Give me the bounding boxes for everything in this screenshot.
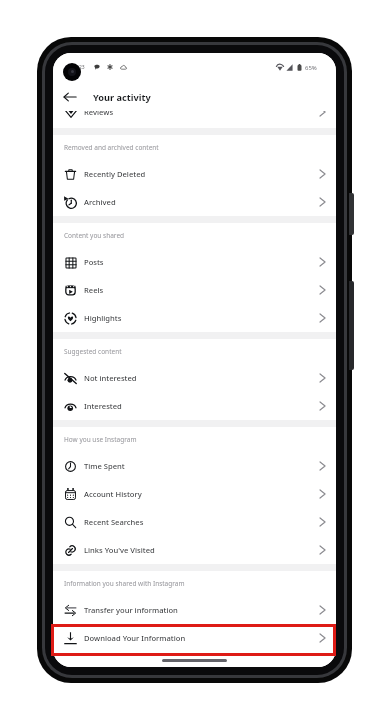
staticText: Your activity (93, 91, 151, 104)
staticText: Recently Deleted (84, 169, 146, 179)
staticText: Highlights (84, 313, 122, 323)
staticText: Reviews (84, 107, 114, 117)
button[interactable]: Posts (53, 248, 336, 276)
staticText: Posts (84, 257, 104, 267)
staticText: Recent Searches (84, 517, 144, 527)
button[interactable]: Reviews (53, 111, 336, 128)
button[interactable]: Back (60, 87, 80, 107)
button[interactable]: Links You've Visited (53, 536, 336, 564)
button[interactable]: Recent Searches (53, 508, 336, 536)
staticText: Information you shared with Instagram (64, 579, 185, 588)
button[interactable]: Archived (53, 188, 336, 216)
staticText: Download Your Information (84, 633, 186, 643)
button[interactable]: Not interested (53, 364, 336, 392)
staticText: Archived (84, 197, 116, 207)
staticText: 23 (79, 64, 85, 71)
button[interactable]: Download Your Information (53, 624, 336, 652)
button[interactable]: Transfer your information (53, 596, 336, 624)
staticText: Suggested content (64, 347, 122, 356)
button[interactable]: Interested (53, 392, 336, 420)
button[interactable]: Account History (53, 480, 336, 508)
staticText: Content you shared (64, 231, 125, 240)
staticText: Removed and archived content (64, 143, 159, 152)
staticText: Reels (84, 285, 104, 295)
staticText: Not interested (84, 373, 137, 383)
button[interactable]: Time Spent (53, 452, 336, 480)
staticText: Transfer your information (84, 605, 178, 615)
staticText: Time Spent (84, 461, 125, 471)
button[interactable]: Highlights (53, 304, 336, 332)
staticText: Interested (84, 401, 122, 411)
staticText: How you use Instagram (64, 435, 137, 444)
staticText: Links You've Visited (84, 545, 155, 555)
staticText: 65% (305, 64, 317, 72)
staticText: Account History (84, 489, 142, 499)
button[interactable]: Reels (53, 276, 336, 304)
button[interactable]: Recently Deleted (53, 160, 336, 188)
